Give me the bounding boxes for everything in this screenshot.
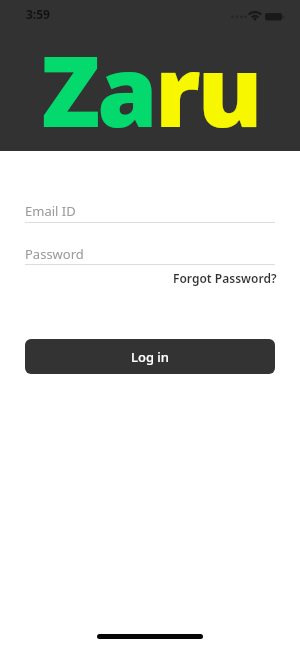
staticText: ru [155,23,260,155]
staticText: Za [41,23,155,155]
button[interactable]: Log in [25,339,275,374]
staticText: Password [25,245,84,263]
staticText: Log in [131,348,169,366]
button[interactable]: Password [25,245,275,265]
staticText: Forgot Password? [173,270,277,286]
staticText: 3:59 [26,6,50,22]
button[interactable]: Email ID [25,202,275,223]
button[interactable]: Forgot Password? [171,268,279,288]
staticText: Email ID [25,202,76,220]
